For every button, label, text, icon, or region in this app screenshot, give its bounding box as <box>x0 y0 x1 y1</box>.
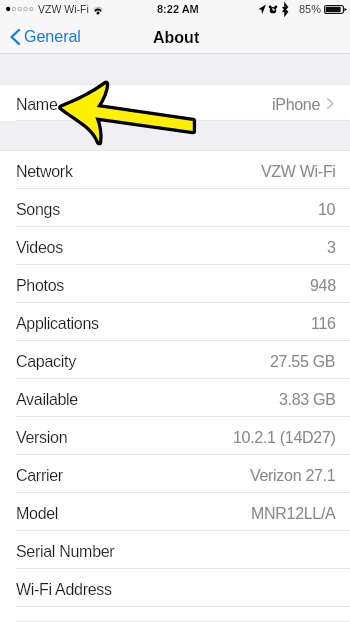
button[interactable]: Model <box>0 493 350 531</box>
staticText: MNR12LL/A <box>251 505 336 523</box>
other: Alarm <box>269 4 277 15</box>
staticText: Available <box>16 391 78 409</box>
other: Bluetooth <box>282 4 288 15</box>
staticText: 10.2.1 (14D27) <box>233 429 336 447</box>
staticText: Version <box>16 429 68 447</box>
button[interactable]: Carrier <box>0 455 350 493</box>
staticText: 3 <box>327 239 336 257</box>
staticText: Wi-Fi Address <box>16 581 112 599</box>
button[interactable]: General <box>0 23 91 51</box>
staticText: 3.83 GB <box>279 391 336 409</box>
other: Location <box>258 4 266 14</box>
button[interactable]: Applications <box>0 303 350 341</box>
staticText: Videos <box>16 239 63 257</box>
button[interactable]: Wi-Fi Address <box>0 569 350 607</box>
staticText: Verizon 27.1 <box>250 467 336 485</box>
staticText: General <box>24 28 81 46</box>
other: Open <box>327 98 334 109</box>
staticText: 116 <box>311 315 336 333</box>
other: Wi-Fi <box>93 4 103 15</box>
staticText: Name <box>16 96 58 114</box>
staticText: 10 <box>318 201 336 219</box>
other: Battery <box>324 5 347 14</box>
staticText: 8:22 AM <box>157 3 199 15</box>
button[interactable]: Videos <box>0 227 350 265</box>
staticText: 85% <box>299 3 322 15</box>
staticText: VZW Wi-Fi <box>261 163 336 181</box>
staticText: 948 <box>310 277 336 295</box>
button[interactable]: Available <box>0 379 350 417</box>
staticText: 27.55 GB <box>270 353 336 371</box>
button[interactable]: Network <box>0 151 350 189</box>
button[interactable] <box>0 607 350 622</box>
button[interactable]: Photos <box>0 265 350 303</box>
staticText: Model <box>16 505 59 523</box>
staticText: About <box>153 29 200 47</box>
staticText: Network <box>16 163 73 181</box>
staticText: Songs <box>16 201 60 219</box>
staticText: Capacity <box>16 353 76 371</box>
staticText: Photos <box>16 277 65 295</box>
button[interactable]: Songs <box>0 189 350 227</box>
staticText: Carrier <box>16 467 63 485</box>
staticText: Serial Number <box>16 543 115 561</box>
button[interactable]: Serial Number <box>0 531 350 569</box>
staticText: Applications <box>16 315 99 333</box>
button[interactable]: Name <box>0 85 350 121</box>
staticText: iPhone <box>272 96 321 114</box>
staticText: VZW Wi-Fi <box>38 3 89 15</box>
button[interactable]: Capacity <box>0 341 350 379</box>
button[interactable]: Version <box>0 417 350 455</box>
